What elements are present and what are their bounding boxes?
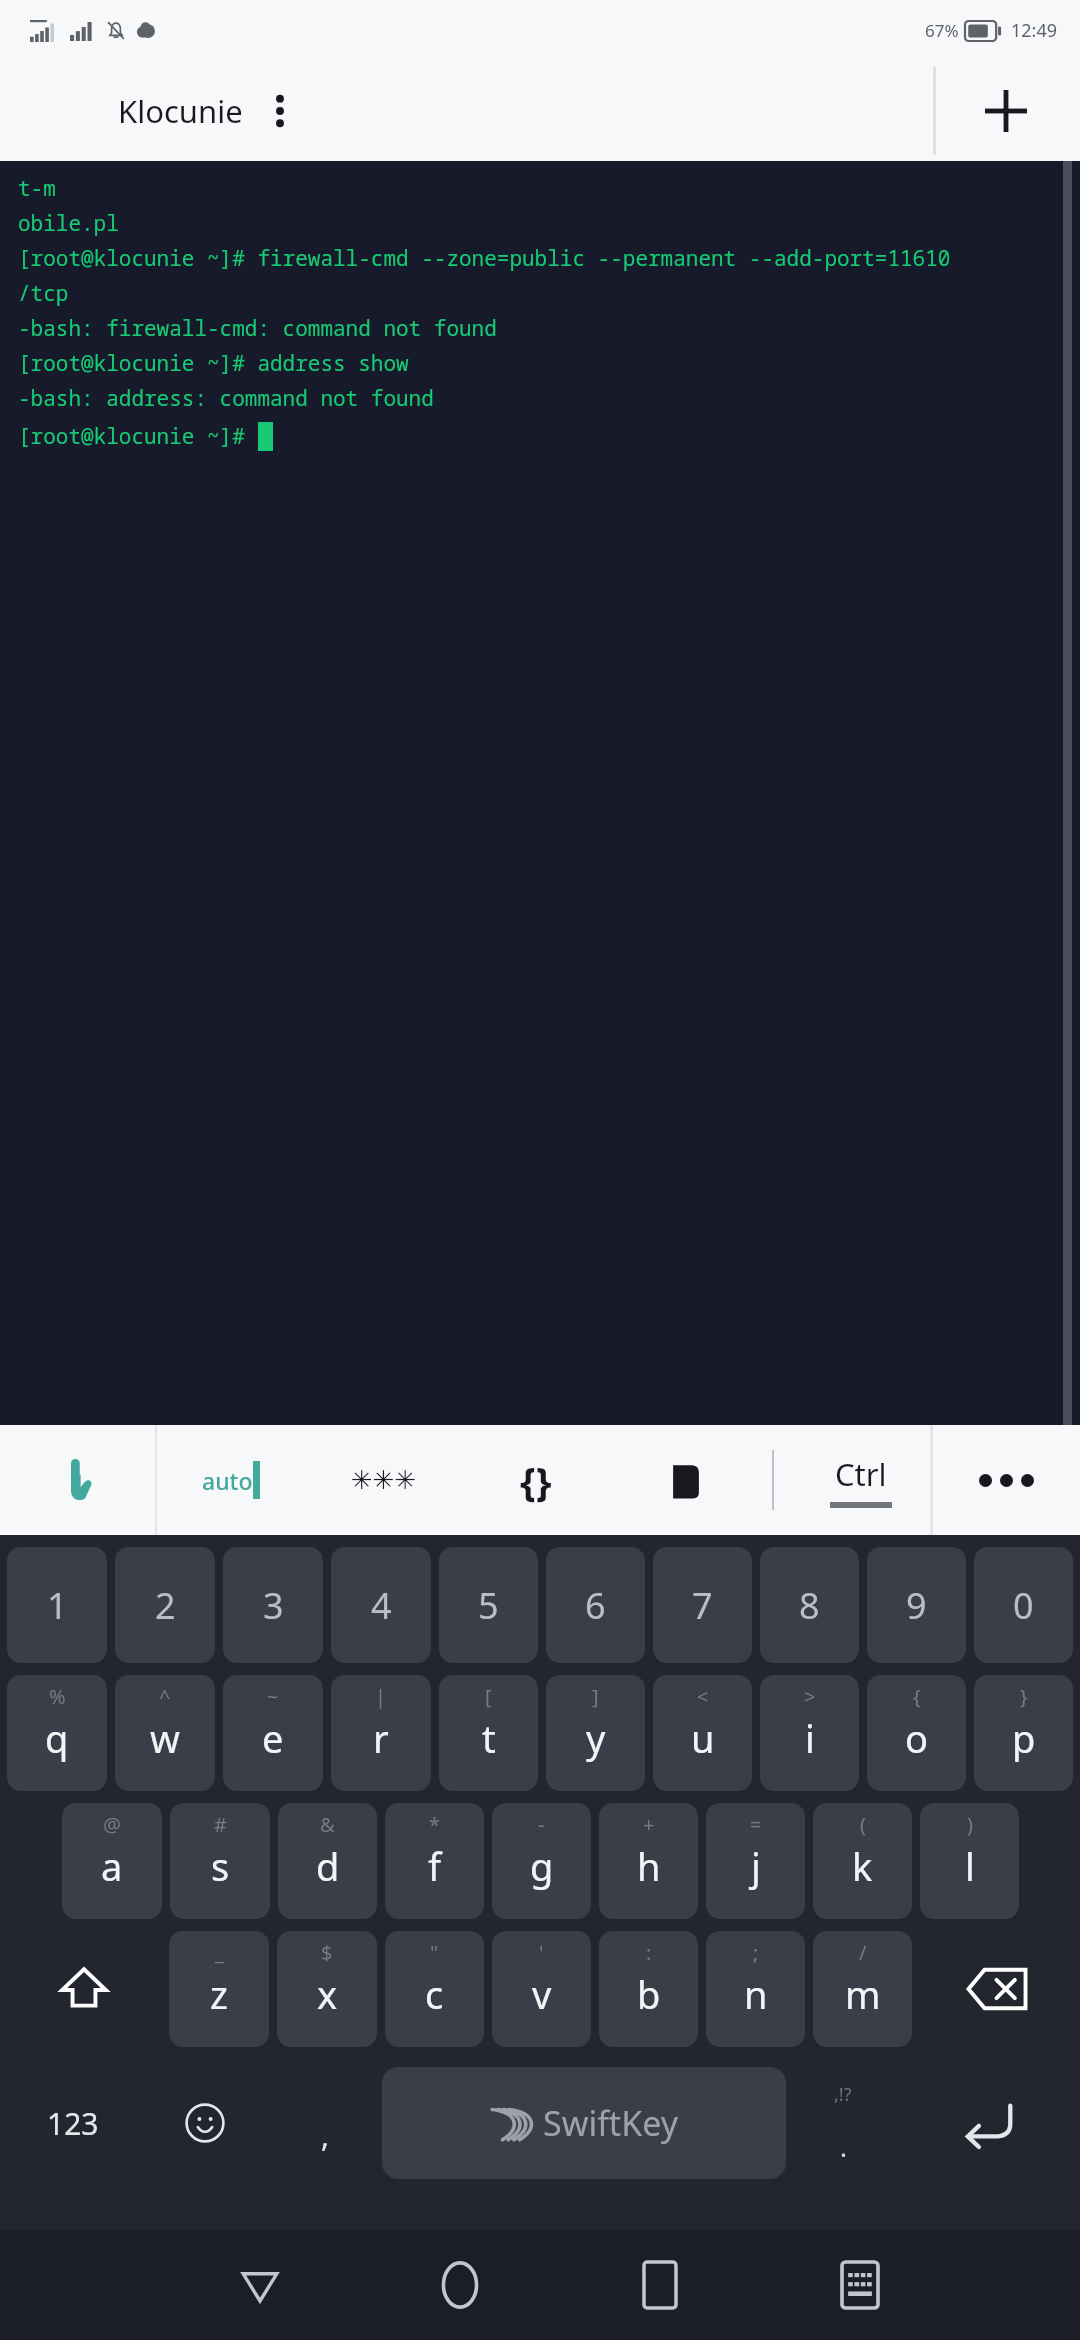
staticText: = — [750, 1811, 762, 1838]
button[interactable]: ( — [813, 1803, 912, 1919]
button[interactable]: ,!? — [786, 2053, 900, 2193]
staticText: ' — [539, 1939, 544, 1966]
staticText: _ — [215, 1939, 224, 1966]
button[interactable]: $ — [277, 1931, 377, 2047]
button[interactable]: / — [813, 1931, 912, 2047]
staticText: 7 — [692, 1581, 713, 1630]
button[interactable]: + — [599, 1803, 698, 1919]
staticText: {} — [520, 1453, 552, 1507]
staticText: 6 — [585, 1581, 606, 1630]
staticText: ✳✳✳ — [351, 1465, 417, 1495]
staticText: obile.pl — [18, 209, 119, 244]
button[interactable]: Space — [382, 2067, 786, 2179]
button[interactable]: @ — [62, 1803, 162, 1919]
button[interactable]: 6 — [546, 1547, 645, 1663]
staticText: k — [852, 1840, 873, 1892]
button[interactable]: " — [385, 1931, 484, 2047]
button[interactable]: > — [760, 1675, 859, 1791]
staticText: p — [1012, 1712, 1036, 1764]
button[interactable]: [ — [439, 1675, 538, 1791]
button[interactable]: 1 — [7, 1547, 107, 1663]
staticText: l — [965, 1840, 975, 1892]
button[interactable]: Emoji — [142, 2053, 268, 2193]
button[interactable]: Home — [360, 2230, 560, 2340]
staticText: 1 — [47, 1581, 68, 1630]
button[interactable]: Back — [160, 2230, 360, 2340]
staticText: [root@klocunie ~]# address show — [18, 349, 409, 384]
button[interactable]: ) — [920, 1803, 1019, 1919]
button[interactable]: # — [170, 1803, 270, 1919]
button[interactable]: Recents — [560, 2230, 760, 2340]
button[interactable]: & — [278, 1803, 377, 1919]
button[interactable]: - — [492, 1803, 591, 1919]
staticText: t-m — [18, 174, 56, 209]
staticText: 5 — [478, 1581, 499, 1630]
staticText: 3 — [263, 1581, 284, 1630]
button[interactable]: ~ — [223, 1675, 323, 1791]
staticText: SwiftKey — [543, 2100, 679, 2146]
button[interactable]: ; — [706, 1931, 805, 2047]
button[interactable]: 7 — [653, 1547, 752, 1663]
staticText: /tcp — [18, 279, 69, 314]
button[interactable]: 4 — [331, 1547, 431, 1663]
staticText: a — [101, 1840, 123, 1892]
staticText: $ — [321, 1939, 333, 1966]
staticText: < — [697, 1683, 709, 1710]
button[interactable]: 123 — [3, 2053, 142, 2193]
button[interactable]: {} — [461, 1425, 611, 1535]
button[interactable]: } — [974, 1675, 1073, 1791]
button[interactable]: Ctrl — [790, 1425, 932, 1535]
button[interactable]: 9 — [867, 1547, 966, 1663]
button[interactable]: Klocunie — [118, 90, 289, 132]
button[interactable]: 2 — [115, 1547, 215, 1663]
staticText: [ — [485, 1683, 492, 1710]
staticText: , — [321, 2115, 330, 2156]
staticText: auto — [202, 1465, 253, 1496]
staticText: -bash: firewall-cmd: command not found — [18, 314, 497, 349]
button[interactable]: 8 — [760, 1547, 859, 1663]
staticText: v — [532, 1968, 552, 2020]
button[interactable]: % — [7, 1675, 107, 1791]
staticText: 12:49 — [1011, 18, 1058, 43]
button[interactable]: 5 — [439, 1547, 538, 1663]
button[interactable]: = — [706, 1803, 805, 1919]
button[interactable]: More options — [932, 1425, 1080, 1535]
staticText: ( — [860, 1811, 866, 1838]
button[interactable]: auto — [156, 1425, 306, 1535]
button[interactable]: Touch mode — [0, 1425, 156, 1535]
staticText: o — [905, 1712, 928, 1764]
staticText: ) — [967, 1811, 973, 1838]
button[interactable]: | — [331, 1675, 431, 1791]
button[interactable]: : — [599, 1931, 698, 2047]
staticText: + — [643, 1811, 655, 1838]
button[interactable]: 3 — [223, 1547, 323, 1663]
button[interactable]: Files — [611, 1425, 761, 1535]
button[interactable]: Keyboard — [760, 2230, 960, 2340]
staticText: n — [744, 1968, 768, 2020]
staticText: > — [804, 1683, 816, 1710]
button[interactable]: Backspace — [916, 1925, 1077, 2053]
button[interactable]: _ — [169, 1931, 269, 2047]
staticText: e — [262, 1712, 284, 1764]
button[interactable]: New session — [968, 73, 1044, 149]
staticText: q — [45, 1712, 69, 1764]
staticText: i — [805, 1712, 815, 1764]
staticText: s — [211, 1840, 230, 1892]
staticText: Klocunie — [118, 90, 243, 132]
button[interactable]: < — [653, 1675, 752, 1791]
button[interactable]: * — [385, 1803, 484, 1919]
button[interactable]: ] — [546, 1675, 645, 1791]
button[interactable]: Password — [306, 1425, 461, 1535]
button[interactable]: Enter — [900, 2053, 1077, 2193]
staticText: -bash: address: command not found — [18, 384, 434, 419]
button[interactable]: Shift — [3, 1925, 165, 2053]
button[interactable]: 0 — [974, 1547, 1073, 1663]
staticText: 123 — [47, 2103, 99, 2144]
button[interactable]: { — [867, 1675, 966, 1791]
staticText: f — [428, 1840, 442, 1892]
button[interactable]: ' — [492, 1931, 591, 2047]
staticText: % — [49, 1683, 66, 1710]
button[interactable]: , — [268, 2053, 382, 2193]
button[interactable]: ^ — [115, 1675, 215, 1791]
staticText: 2 — [155, 1581, 176, 1630]
